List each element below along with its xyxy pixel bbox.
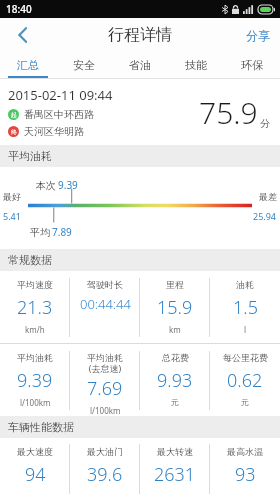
staticText: 总花费 (162, 352, 189, 363)
staticText: 行程详情 (108, 25, 172, 45)
staticText: km/h (25, 324, 45, 335)
staticText: 7.89 (52, 225, 72, 239)
staticText: 终 (11, 128, 17, 136)
staticText: 9.39 (58, 178, 78, 192)
staticText: 9.93 (157, 368, 193, 393)
staticText: 最好 (3, 191, 21, 202)
staticText: 7.69 (87, 376, 123, 401)
staticText: 元 (241, 397, 249, 407)
button[interactable]: 安全 (56, 52, 112, 78)
button[interactable]: Back (0, 18, 44, 52)
staticText: 本次 (36, 179, 56, 192)
button[interactable]: 每公里花费 (210, 344, 280, 416)
staticText: 75.9 (199, 92, 258, 133)
staticText: 最大转速 (157, 446, 193, 457)
staticText: 技能 (185, 58, 207, 72)
button[interactable]: 油耗 (210, 271, 280, 343)
staticText: 平均油耗 (去怠速) (87, 352, 123, 374)
staticText: 常规数据 (8, 253, 52, 267)
button[interactable]: 里程 (140, 271, 210, 343)
staticText: 最差 (259, 191, 277, 202)
staticText: 起 (11, 111, 17, 119)
staticText: 省油 (129, 58, 151, 72)
button[interactable]: 最高水温 (210, 438, 280, 499)
staticText: 最大速度 (17, 446, 53, 457)
staticText: 车辆性能数据 (8, 420, 74, 434)
staticText: 15.9 (157, 295, 193, 320)
staticText: 25.94 (253, 210, 277, 222)
staticText: l (244, 324, 247, 335)
staticText: 番禺区中环西路 (24, 108, 94, 121)
staticText: 平均速度 (17, 279, 53, 290)
staticText: 元 (171, 397, 179, 407)
staticText: 平均 (30, 226, 50, 239)
staticText: l/100km (90, 405, 121, 416)
staticText: 18:40 (6, 2, 32, 16)
staticText: 分 (260, 117, 270, 130)
staticText: 0.62 (227, 368, 263, 393)
button[interactable]: 驾驶时长 (70, 271, 140, 343)
staticText: 油耗 (236, 279, 254, 290)
staticText: 94 (25, 462, 46, 487)
button[interactable]: 最大转速 (140, 438, 210, 499)
button[interactable]: 平均速度 (0, 271, 70, 343)
staticText: 驾驶时长 (87, 279, 123, 290)
staticText: l/100km (20, 397, 51, 408)
staticText: 平均油耗 (8, 149, 52, 163)
button[interactable]: 汇总 (0, 52, 56, 78)
staticText: 每公里花费 (223, 352, 268, 363)
staticText: 最高水温 (227, 446, 263, 457)
button[interactable]: 最大油门 (70, 438, 140, 499)
staticText: 平均油耗 (17, 352, 53, 363)
staticText: 1.5 (233, 295, 258, 320)
staticText: 最大油门 (87, 446, 123, 457)
staticText: km (169, 324, 181, 335)
button[interactable]: 平均油耗 (去怠速) (70, 344, 140, 416)
staticText: 环保 (241, 58, 263, 72)
staticText: 5.41 (3, 210, 21, 222)
staticText: 分享 (246, 28, 270, 43)
button[interactable]: 分享 (236, 18, 280, 52)
button[interactable]: 技能 (168, 52, 224, 78)
button[interactable]: 最大速度 (0, 438, 70, 499)
staticText: 00:44:44 (80, 295, 131, 313)
staticText: 2631 (154, 462, 196, 487)
staticText: 汇总 (17, 58, 39, 72)
button[interactable]: 环保 (224, 52, 280, 78)
staticText: 21.3 (17, 295, 53, 320)
button[interactable]: 省油 (112, 52, 168, 78)
staticText: 9.39 (17, 368, 53, 393)
staticText: 39.6 (87, 462, 123, 487)
staticText: 里程 (166, 279, 184, 290)
button[interactable]: 平均油耗 (0, 344, 70, 416)
staticText: 安全 (73, 58, 95, 72)
staticText: 天河区华明路 (24, 125, 84, 138)
staticText: 93 (235, 462, 256, 487)
staticText: 2015-02-11 09:44 (8, 86, 113, 104)
button[interactable]: 总花费 (140, 344, 210, 416)
